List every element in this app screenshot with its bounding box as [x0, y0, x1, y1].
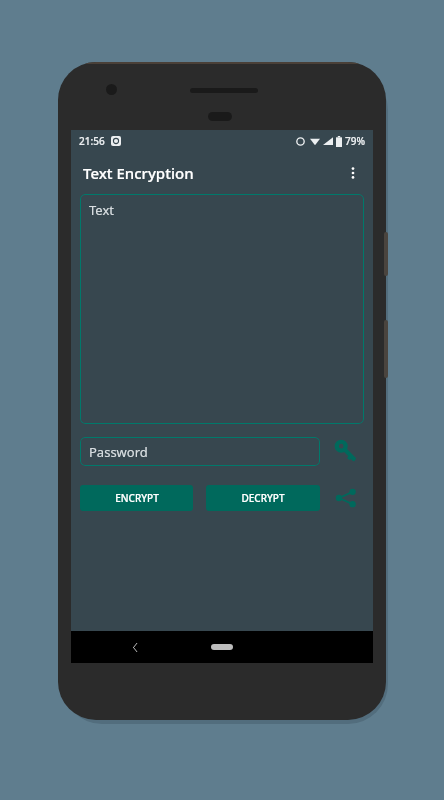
button[interactable]: Home	[202, 637, 242, 657]
button[interactable]: ENCRYPT	[80, 485, 193, 511]
staticText: 79%	[345, 134, 365, 148]
staticText: DECRYPT	[241, 491, 285, 505]
button[interactable]: Share	[328, 480, 364, 516]
button[interactable]: More options	[333, 153, 373, 193]
staticText: Text	[89, 201, 114, 219]
button[interactable]: Text	[80, 194, 364, 424]
staticText: ENCRYPT	[115, 491, 159, 505]
staticText: Text Encryption	[83, 163, 194, 183]
button[interactable]: Generate key	[328, 433, 364, 469]
button[interactable]: Password	[80, 437, 320, 466]
staticText: Password	[89, 443, 148, 461]
button[interactable]: Back	[119, 631, 151, 663]
staticText: 21:56	[79, 134, 105, 148]
button[interactable]: DECRYPT	[206, 485, 320, 511]
